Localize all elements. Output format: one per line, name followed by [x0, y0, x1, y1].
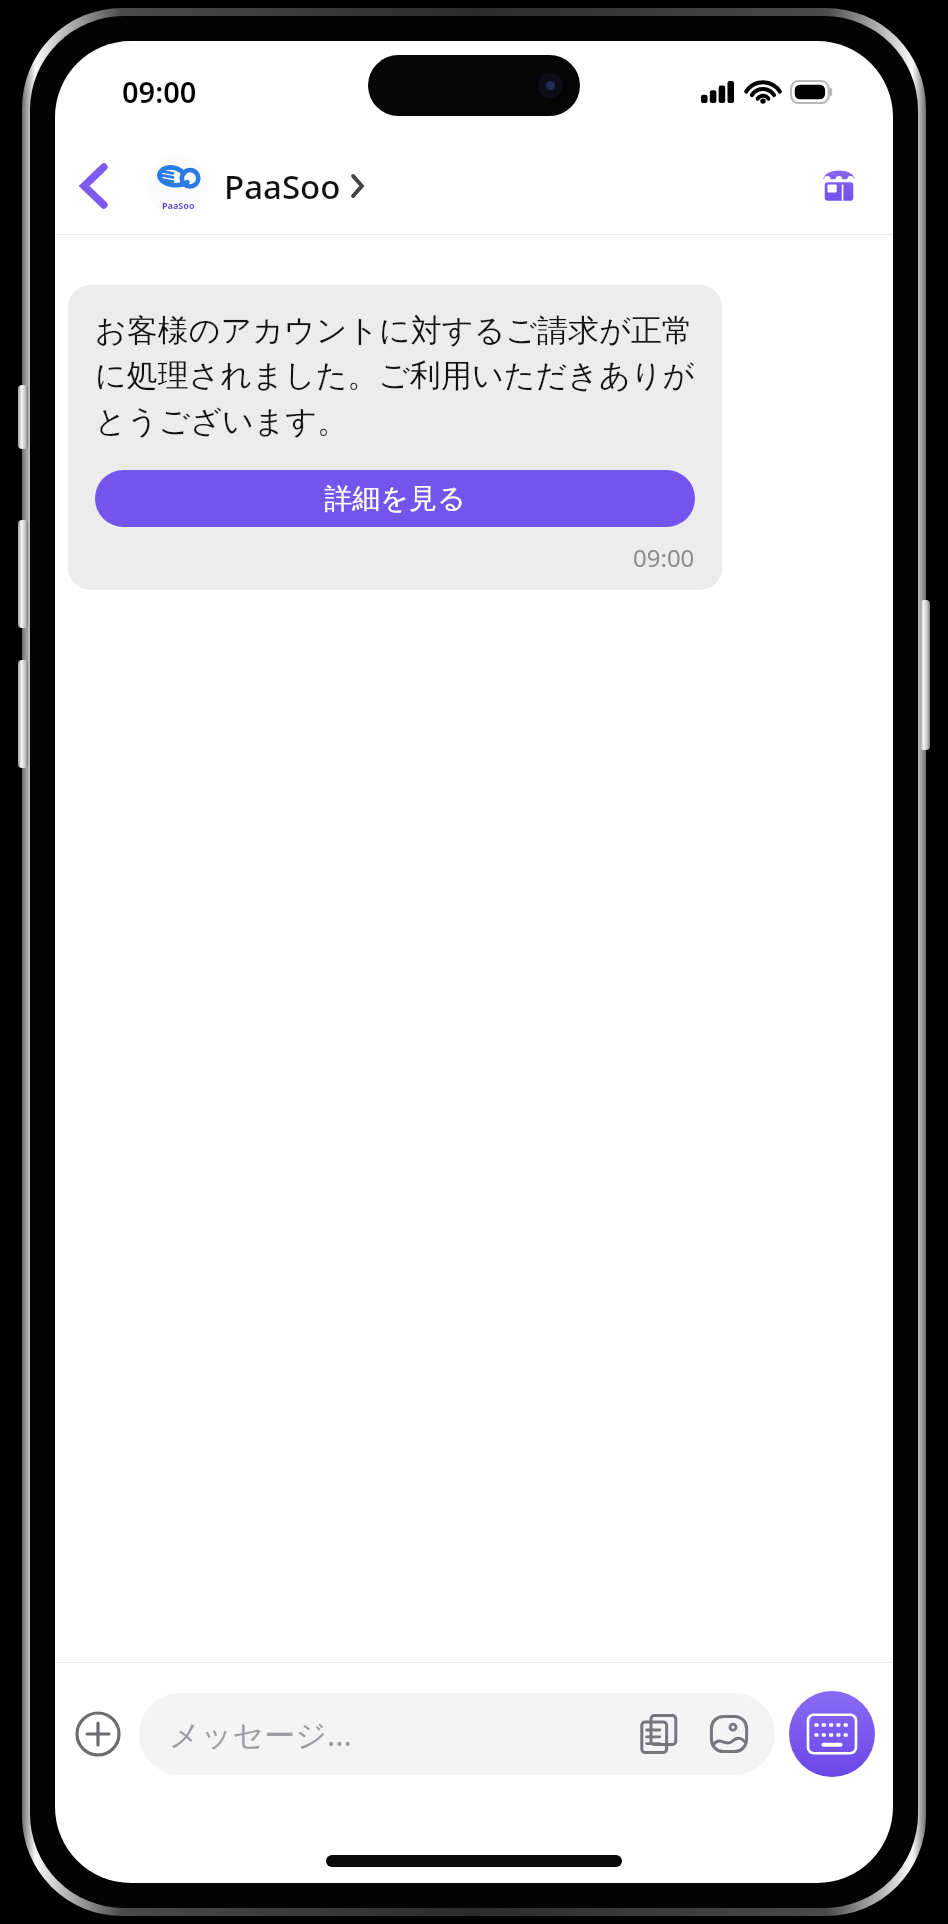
button[interactable]: PaaSoo: [143, 149, 367, 223]
staticText: 09:00: [122, 72, 197, 111]
staticText: PaaSoo: [224, 164, 341, 209]
button[interactable]: Add attachment: [67, 1703, 129, 1765]
staticText: 09:00: [633, 541, 695, 574]
staticText: 詳細を見る: [324, 481, 466, 516]
button[interactable]: 詳細を見る: [95, 470, 695, 527]
button[interactable]: Back: [63, 155, 125, 217]
button[interactable]: Templates: [631, 1706, 687, 1762]
button[interactable]: Store: [807, 154, 871, 218]
staticText: お客様のアカウントに対するご請求が正常に処理されました。ご利用いただきありがとう…: [95, 311, 695, 442]
button[interactable]: Keyboard: [789, 1691, 875, 1777]
staticText: メッセージ...: [169, 1713, 352, 1755]
button[interactable]: Image: [701, 1706, 757, 1762]
button[interactable]: メッセージ...: [139, 1693, 775, 1775]
staticText: PaaSoo: [162, 199, 195, 211]
